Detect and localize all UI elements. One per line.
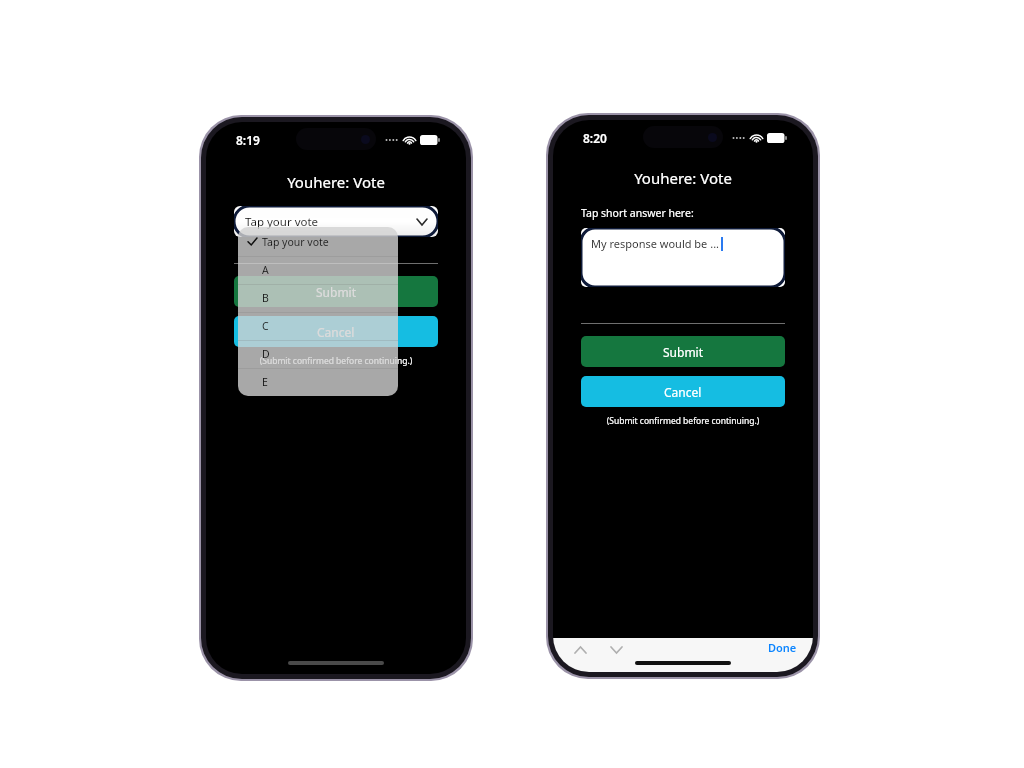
staticText: 8:19 xyxy=(236,132,260,148)
button[interactable]: Tap your vote xyxy=(238,227,398,256)
button[interactable]: Cancel xyxy=(234,316,438,347)
button[interactable]: Tap your vote xyxy=(234,206,438,237)
button[interactable]: My response would be ... xyxy=(581,228,785,287)
button[interactable]: C xyxy=(238,312,398,340)
button[interactable]: D xyxy=(238,340,398,368)
staticText: B xyxy=(262,291,269,305)
staticText: My response would be ... xyxy=(591,236,720,251)
button[interactable]: E xyxy=(238,368,398,396)
staticText: Youhere: Vote xyxy=(553,168,813,188)
staticText: (Submit confirmed before continuing.) xyxy=(581,415,785,427)
staticText: E xyxy=(262,375,268,389)
staticText: Submit xyxy=(663,344,704,360)
button[interactable]: Submit xyxy=(234,276,438,307)
button[interactable]: B xyxy=(238,284,398,312)
staticText: Submit xyxy=(316,284,357,300)
staticText: A xyxy=(262,263,269,277)
button[interactable]: Cancel xyxy=(581,376,785,407)
staticText: Youhere: Vote xyxy=(206,172,466,192)
staticText: Done xyxy=(768,640,797,655)
staticText: Cancel xyxy=(664,384,702,400)
staticText: Tap your vote xyxy=(245,214,319,230)
staticText: C xyxy=(262,319,269,333)
staticText: Tap short answer here: xyxy=(581,206,694,220)
button[interactable]: A xyxy=(238,256,398,284)
button[interactable]: Submit xyxy=(581,336,785,367)
staticText: (Submit confirmed before continuing.) xyxy=(234,355,438,367)
button[interactable]: Next field xyxy=(607,641,625,659)
button[interactable]: Previous field xyxy=(571,641,589,659)
staticText: D xyxy=(262,347,270,361)
staticText: 8:20 xyxy=(583,130,607,146)
staticText: Cancel xyxy=(317,324,355,340)
button[interactable]: Done xyxy=(768,640,797,655)
staticText: Tap your vote xyxy=(262,235,329,249)
